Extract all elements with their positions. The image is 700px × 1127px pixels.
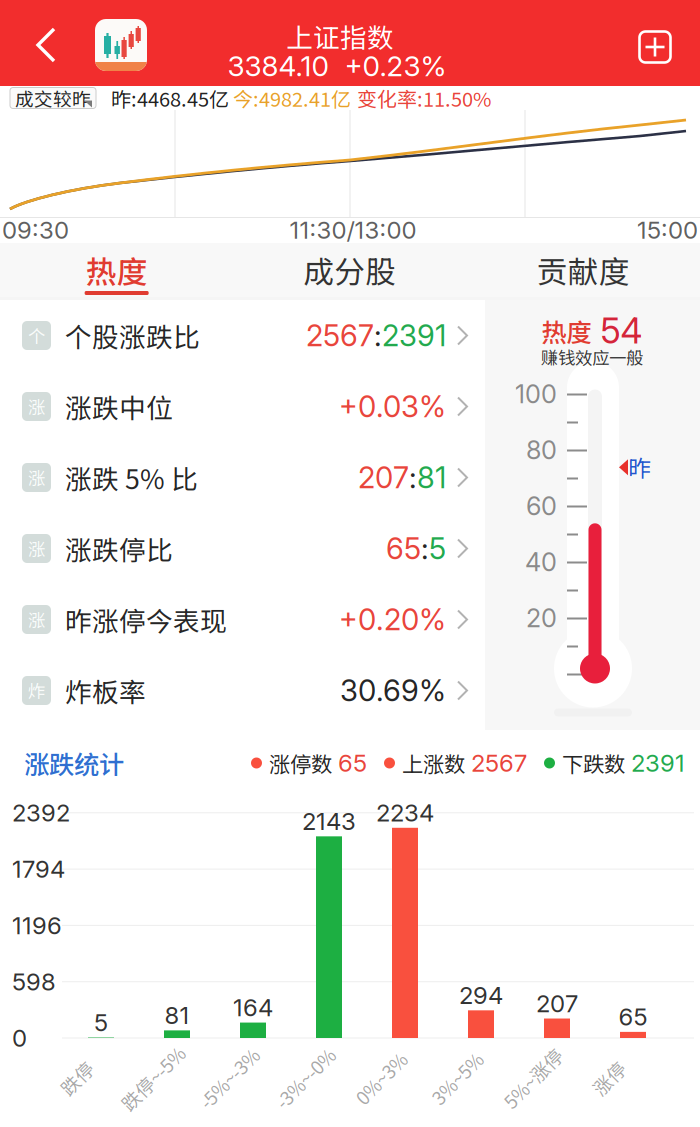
button[interactable]: 涨 <box>0 584 485 655</box>
staticText: : <box>409 460 417 495</box>
button[interactable]: 涨 <box>0 371 485 442</box>
staticText: +0.03% <box>339 389 446 424</box>
button[interactable]: 涨 <box>0 442 485 513</box>
button[interactable]: Back <box>10 9 82 81</box>
staticText: 跌停~-5% <box>112 1064 193 1091</box>
staticText: 164 <box>233 993 273 1022</box>
staticText: : <box>421 531 429 566</box>
staticText: 0%~3% <box>349 1064 413 1091</box>
staticText: 涨停数 <box>269 748 332 778</box>
staticText: +0.20% <box>339 602 446 637</box>
staticText: 炸板率 <box>65 671 146 710</box>
staticText: 207 <box>358 460 409 495</box>
staticText: 昨涨停今表现 <box>65 600 227 639</box>
button[interactable]: 炸 <box>0 655 485 726</box>
staticText: 2143 <box>302 807 356 836</box>
staticText: 09:30 <box>2 215 69 244</box>
staticText: 3%~5% <box>425 1064 489 1091</box>
staticText: 80 <box>526 435 557 465</box>
staticText: 81 <box>164 1001 189 1030</box>
staticText: 54 <box>600 310 642 352</box>
staticText: 2567 <box>471 748 527 777</box>
staticText: 变化率:11.50% <box>357 83 491 112</box>
staticText: 2392 <box>12 798 70 827</box>
staticText: 2567 <box>306 318 374 353</box>
staticText: 5 <box>429 531 446 566</box>
staticText: 1196 <box>12 911 62 940</box>
staticText: 涨 <box>28 607 45 632</box>
button[interactable]: 个 <box>0 300 485 371</box>
staticText: 热度 <box>541 313 591 349</box>
staticText: 上涨数 <box>402 748 465 778</box>
staticText: 2234 <box>376 798 434 827</box>
button[interactable]: 涨 <box>0 513 485 584</box>
staticText: 涨跌停比 <box>65 529 173 568</box>
staticText: 5%~涨停 <box>495 1064 570 1091</box>
staticText: 0 <box>12 1023 27 1052</box>
staticText: 2391 <box>382 318 446 353</box>
staticText: 涨跌统计 <box>24 745 124 781</box>
staticText: 炸 <box>28 678 45 703</box>
staticText: -3%~-0% <box>267 1064 343 1091</box>
staticText: 3384.10 +0.23% <box>227 49 446 83</box>
staticText: 207 <box>536 989 578 1018</box>
staticText: 今:4982.41亿 <box>233 83 351 112</box>
button[interactable]: 成交较昨 <box>10 87 96 108</box>
staticText: 涨 <box>28 465 45 490</box>
staticText: 涨 <box>28 394 45 419</box>
staticText: 涨停 <box>590 1064 628 1091</box>
staticText: 40 <box>525 547 557 577</box>
staticText: 294 <box>459 981 503 1010</box>
button[interactable]: 热度 <box>0 243 233 297</box>
staticText: 成分股 <box>303 248 396 292</box>
staticText: 1794 <box>12 855 65 884</box>
staticText: 赚钱效应一般 <box>541 344 643 370</box>
staticText: 昨:4468.45亿 <box>111 83 229 112</box>
staticText: 上证指数 <box>286 17 394 55</box>
staticText: 热度 <box>86 248 148 292</box>
staticText: 30.69% <box>340 673 446 708</box>
staticText: : <box>374 318 382 353</box>
staticText: 涨跌 5% 比 <box>65 458 198 497</box>
staticText: 65 <box>618 1002 647 1031</box>
staticText: 15:00 <box>637 215 698 244</box>
staticText: 跌停 <box>58 1064 96 1091</box>
staticText: 5 <box>94 1008 108 1037</box>
button[interactable]: Add <box>626 18 684 76</box>
staticText: 100 <box>515 379 557 409</box>
button[interactable]: 贡献度 <box>467 243 700 297</box>
button[interactable]: 成分股 <box>233 243 467 297</box>
staticText: 昨 <box>628 450 651 483</box>
staticText: 涨 <box>28 536 45 561</box>
staticText: 11:30/13:00 <box>289 215 416 244</box>
staticText: 个股涨跌比 <box>65 316 200 355</box>
staticText: 个 <box>28 323 45 348</box>
staticText: 65 <box>386 531 421 566</box>
staticText: -5%~-3% <box>191 1064 267 1091</box>
staticText: 81 <box>417 460 446 495</box>
staticText: 2391 <box>631 748 685 777</box>
staticText: 20 <box>526 603 557 633</box>
staticText: 下跌数 <box>562 748 625 778</box>
staticText: 成交较昨 <box>15 84 91 111</box>
staticText: 65 <box>338 748 367 777</box>
staticText: 贡献度 <box>537 248 630 292</box>
staticText: 涨跌中位 <box>65 387 173 426</box>
staticText: 598 <box>12 967 56 996</box>
staticText: 60 <box>526 491 557 521</box>
